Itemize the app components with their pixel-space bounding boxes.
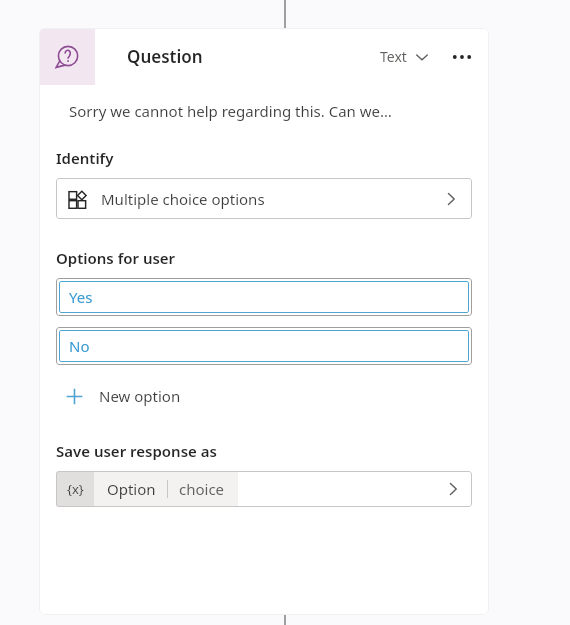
staticText: Options for user [56,248,176,268]
staticText: Multiple choice options [101,189,265,209]
staticText: Save user response as [56,441,217,461]
button[interactable]: Yes [59,281,469,313]
button[interactable]: New option [56,378,191,414]
staticText: No [69,336,90,356]
staticText: choice [179,479,225,499]
button[interactable]: No [59,330,469,362]
button[interactable]: {x} [56,471,472,507]
button[interactable]: Question type [39,28,95,85]
staticText: Option [107,479,156,499]
staticText: Sorry we cannot help regarding this. Can… [69,101,392,121]
staticText: New option [99,386,181,406]
button[interactable]: More options [447,42,477,72]
button[interactable]: Text [376,43,433,70]
staticText: Text [380,47,407,66]
button[interactable]: Multiple choice options [56,178,472,219]
staticText: Question [127,45,203,68]
staticText: Identify [56,148,114,168]
staticText: Yes [69,287,93,307]
staticText: {x} [67,480,84,498]
